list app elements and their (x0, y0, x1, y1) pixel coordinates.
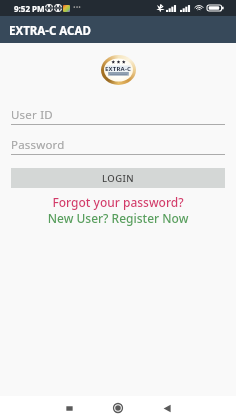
button[interactable]: Home (106, 396, 130, 420)
staticText: 9:52 PM (14, 3, 45, 14)
button[interactable]: Recents (57, 396, 81, 420)
button[interactable]: Forgot your password? (0, 194, 236, 210)
staticText: EXTRA-C ACAD (9, 23, 91, 39)
staticText: EXTRA-C (105, 65, 132, 73)
staticText: User ID (11, 107, 53, 123)
button[interactable]: Password (11, 137, 225, 155)
staticText: LOGIN (102, 172, 134, 185)
button[interactable]: New User? Register Now (0, 210, 236, 226)
button[interactable]: LOGIN (11, 168, 225, 188)
staticText: Password (11, 137, 65, 153)
button[interactable]: User ID (11, 107, 225, 125)
staticText: ••• (73, 3, 81, 13)
button[interactable]: Back (155, 396, 179, 420)
